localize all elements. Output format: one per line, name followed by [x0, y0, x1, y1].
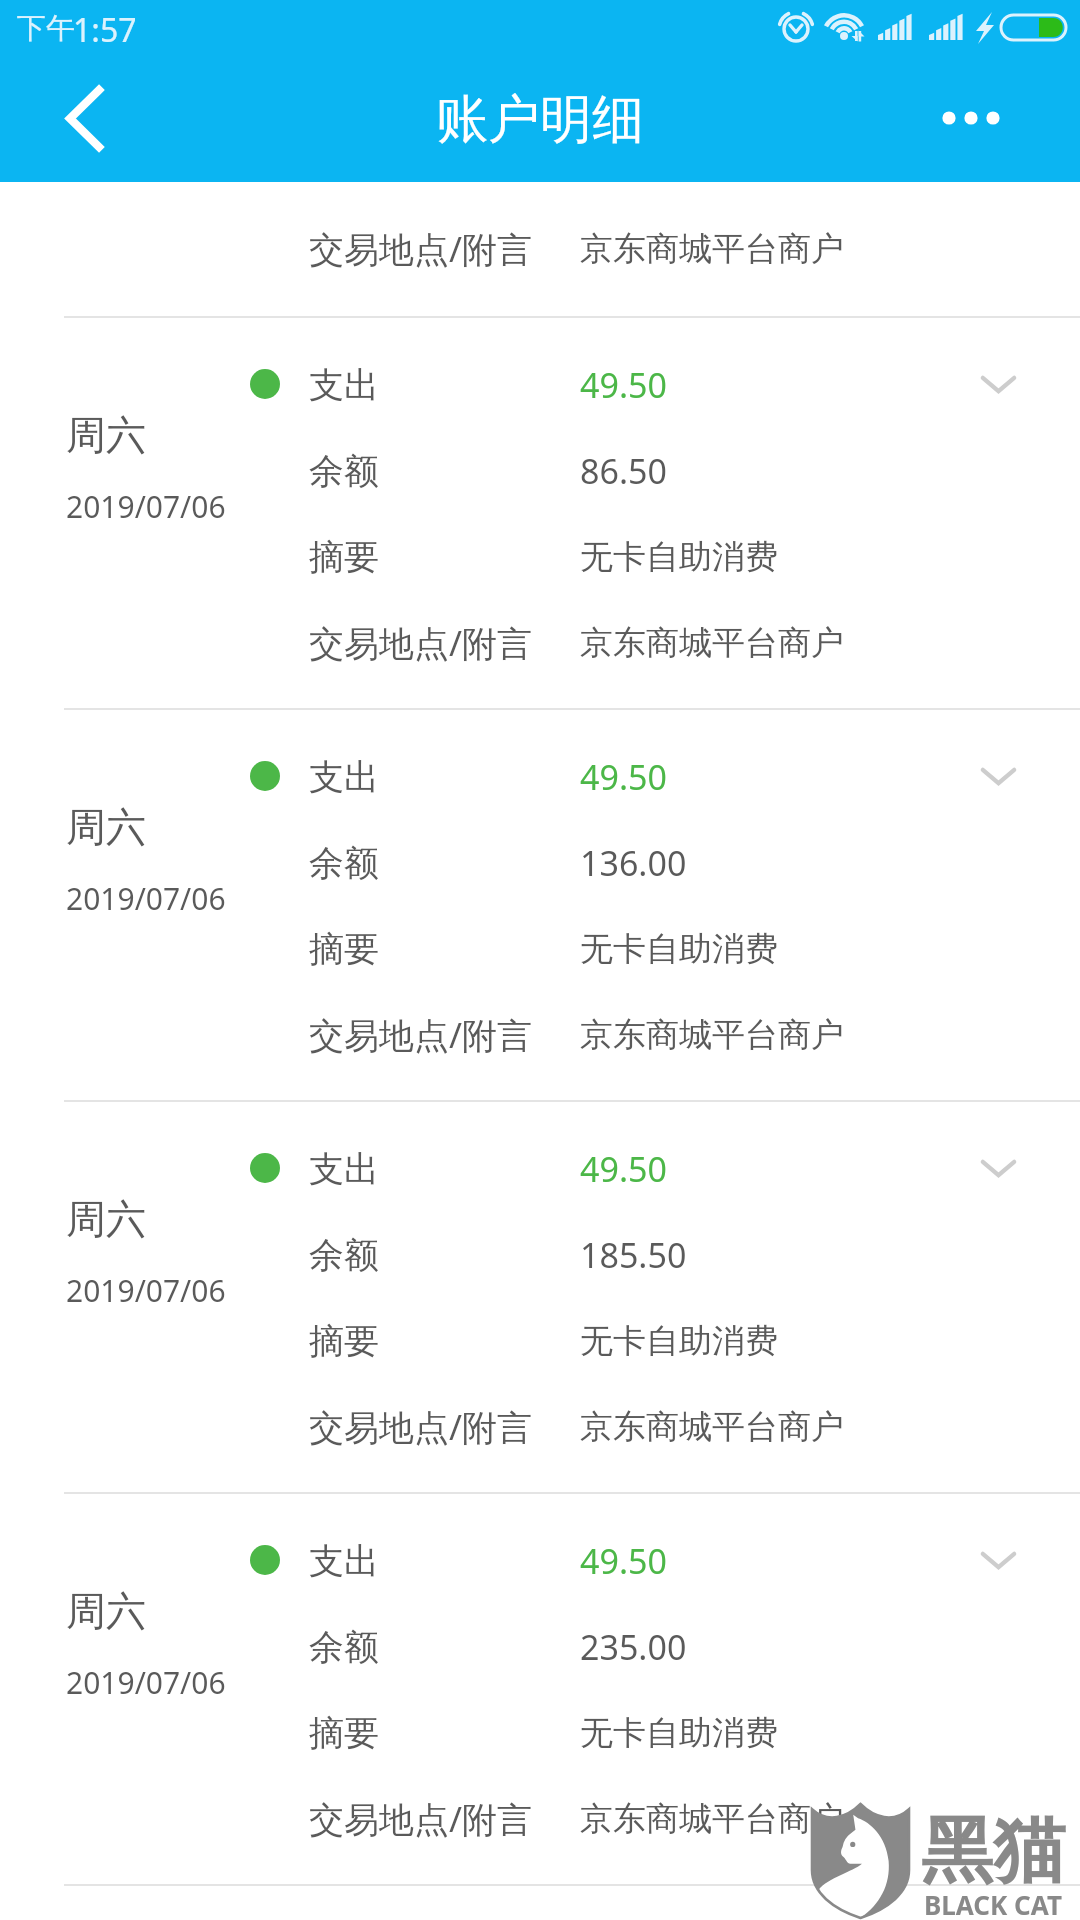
- staticText: 无卡自助消费: [580, 536, 778, 578]
- staticText: 周六: [66, 1194, 146, 1244]
- staticText: 2019/07/06: [66, 1662, 226, 1703]
- button[interactable]: 展开: [970, 734, 1080, 820]
- staticText: 京东商城平台商户: [580, 228, 844, 270]
- button[interactable]: 展开: [970, 1126, 1080, 1212]
- staticText: 京东商城平台商户: [580, 1014, 844, 1056]
- button[interactable]: 展开: [970, 342, 1080, 428]
- button[interactable]: 返回: [0, 56, 130, 182]
- staticText: 无卡自助消费: [580, 928, 778, 970]
- staticText: 49.50: [580, 754, 667, 800]
- staticText: 无卡自助消费: [580, 1712, 778, 1754]
- staticText: 无卡自助消费: [580, 1320, 778, 1362]
- staticText: 2019/07/06: [66, 1270, 226, 1311]
- staticText: 下午: [17, 10, 75, 47]
- staticText: 周六: [66, 410, 146, 460]
- staticText: 235.00: [580, 1624, 687, 1670]
- button[interactable]: 更多: [950, 56, 1080, 182]
- staticText: 余额: [309, 841, 379, 885]
- staticText: 支出: [309, 755, 379, 799]
- staticText: 支出: [309, 363, 379, 407]
- staticText: 摘要: [309, 1319, 379, 1363]
- staticText: 账户明细: [436, 87, 644, 153]
- staticText: 交易地点/附言: [309, 619, 533, 667]
- staticText: 交易地点/附言: [309, 1795, 533, 1843]
- button[interactable]: 交易地点/附言: [0, 182, 1080, 318]
- staticText: 49.50: [580, 1146, 667, 1192]
- staticText: 2019/07/06: [66, 878, 226, 919]
- staticText: 49.50: [580, 1538, 667, 1584]
- staticText: 支出: [309, 1539, 379, 1583]
- staticText: 摘要: [309, 927, 379, 971]
- staticText: 京东商城平台商户: [580, 1406, 844, 1448]
- button[interactable]: 展开: [970, 1518, 1080, 1604]
- button[interactable]: 周六: [0, 1102, 1080, 1494]
- staticText: 185.50: [580, 1232, 687, 1278]
- staticText: 京东商城平台商户: [580, 622, 844, 664]
- staticText: 49.50: [580, 362, 667, 408]
- staticText: 支出: [309, 1147, 379, 1191]
- button[interactable]: 周六: [0, 1494, 1080, 1886]
- staticText: 京东商城平台商户: [580, 1798, 844, 1840]
- staticText: 1:57: [73, 8, 137, 52]
- staticText: 余额: [309, 1233, 379, 1277]
- staticText: 周六: [66, 1586, 146, 1636]
- staticText: 余额: [309, 1625, 379, 1669]
- staticText: 2019/07/06: [66, 486, 226, 527]
- staticText: 摘要: [309, 1711, 379, 1755]
- button[interactable]: 周六: [0, 318, 1080, 710]
- staticText: 黑猫: [921, 1806, 1065, 1897]
- staticText: 交易地点/附言: [309, 1011, 533, 1059]
- staticText: 摘要: [309, 535, 379, 579]
- button[interactable]: 周六: [0, 710, 1080, 1102]
- staticText: BLACK CAT: [924, 1887, 1062, 1920]
- staticText: 136.00: [580, 840, 687, 886]
- staticText: 交易地点/附言: [309, 1403, 533, 1451]
- staticText: 余额: [309, 449, 379, 493]
- staticText: 交易地点/附言: [309, 225, 533, 273]
- staticText: 周六: [66, 802, 146, 852]
- staticText: 86.50: [580, 448, 667, 494]
